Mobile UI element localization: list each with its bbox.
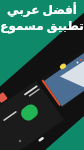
- staticText: تطبيق مسموع: [0, 17, 84, 33]
- staticText: أفضل عربي: [7, 1, 77, 17]
